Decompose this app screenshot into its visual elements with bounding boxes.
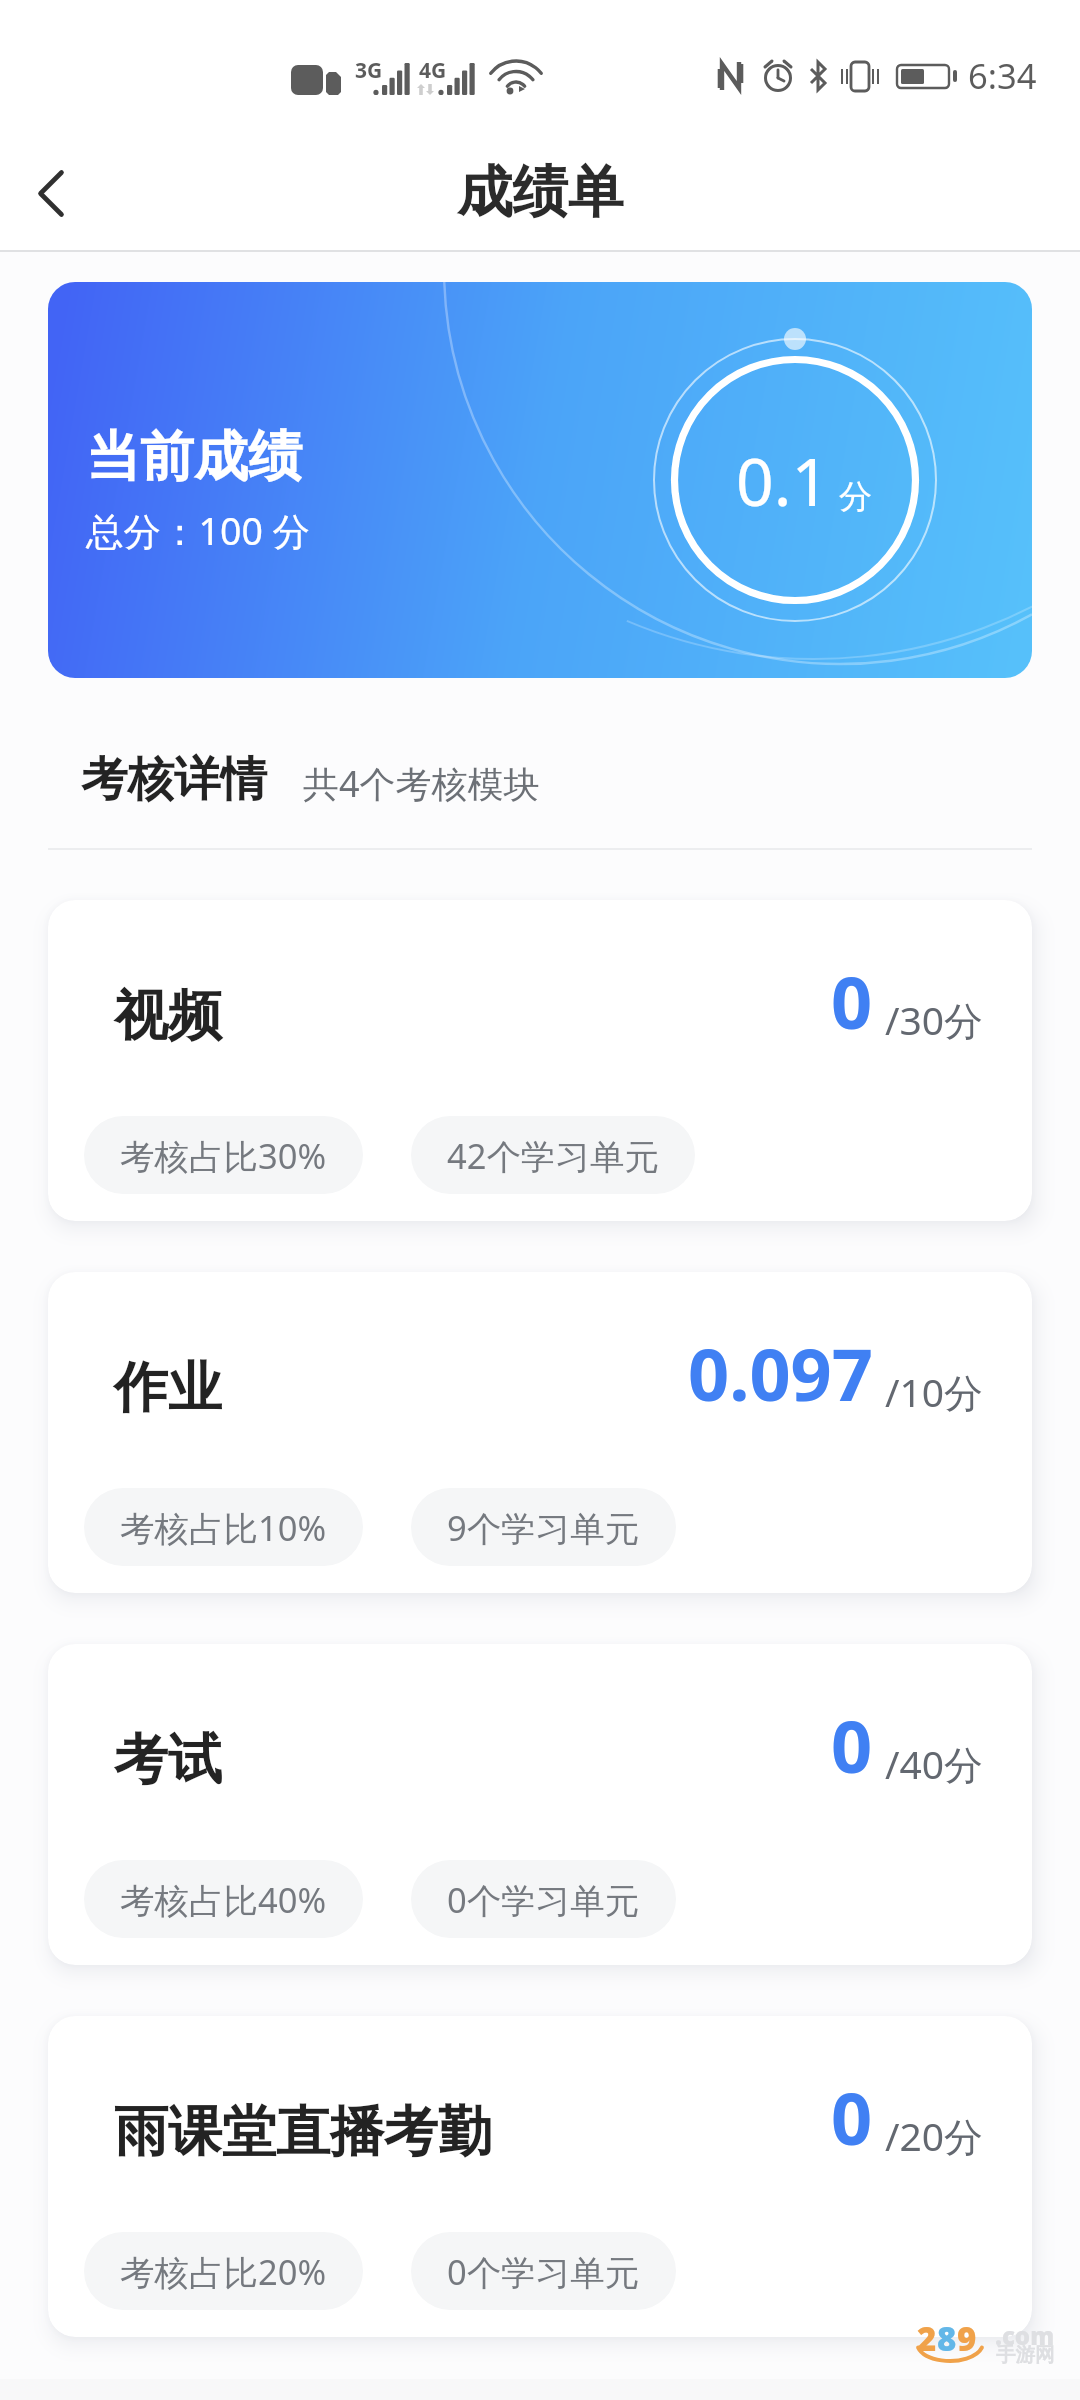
staticText: 0个学习单元 (447, 2248, 640, 2295)
staticText: 考核占比40% (120, 1876, 327, 1923)
button[interactable]: 考试 (48, 1644, 1032, 1965)
staticText: 4G (419, 56, 447, 85)
button[interactable]: 当前成绩 (48, 282, 1032, 678)
staticText: 考核占比30% (120, 1132, 327, 1179)
staticText: 成绩单 (457, 158, 624, 228)
staticText: 当前成绩 (86, 423, 302, 491)
staticText: 8 (937, 2316, 957, 2358)
staticText: 0 (831, 952, 873, 1050)
staticText: 6:34 (968, 52, 1037, 99)
staticText: 考核占比20% (120, 2248, 327, 2295)
staticText: .com (995, 2319, 1055, 2352)
staticText: 0.1 (736, 435, 830, 525)
staticText: 总分：100 分 (86, 505, 311, 556)
staticText: 0.097 (688, 1324, 873, 1422)
staticText: 2 (917, 2316, 937, 2358)
staticText: 共4个考核模块 (303, 759, 540, 808)
staticText: /20分 (885, 2109, 984, 2162)
staticText: /40分 (885, 1737, 984, 1790)
staticText: 9 (957, 2316, 977, 2358)
staticText: 雨课堂直播考勤 (114, 2098, 492, 2166)
staticText: 考核详情 (81, 750, 267, 809)
staticText: 3G (355, 56, 383, 85)
staticText: 考试 (114, 1726, 222, 1794)
button[interactable]: Back (0, 120, 144, 252)
staticText: 0 (831, 1696, 873, 1794)
staticText: /10分 (885, 1365, 984, 1418)
staticText: 分 (839, 476, 872, 518)
staticText: 考核占比10% (120, 1504, 327, 1551)
staticText: 手游网 (996, 2342, 1055, 2367)
staticText: 9个学习单元 (447, 1504, 640, 1551)
staticText: 视频 (114, 982, 222, 1050)
staticText: 42个学习单元 (447, 1132, 659, 1179)
staticText: 0 (831, 2068, 873, 2166)
staticText: 作业 (114, 1354, 222, 1422)
button[interactable]: 作业 (48, 1272, 1032, 1593)
staticText: /30分 (885, 993, 984, 1046)
staticText: 0个学习单元 (447, 1876, 640, 1923)
button[interactable]: 视频 (48, 900, 1032, 1221)
button[interactable]: 雨课堂直播考勤 (48, 2016, 1032, 2337)
